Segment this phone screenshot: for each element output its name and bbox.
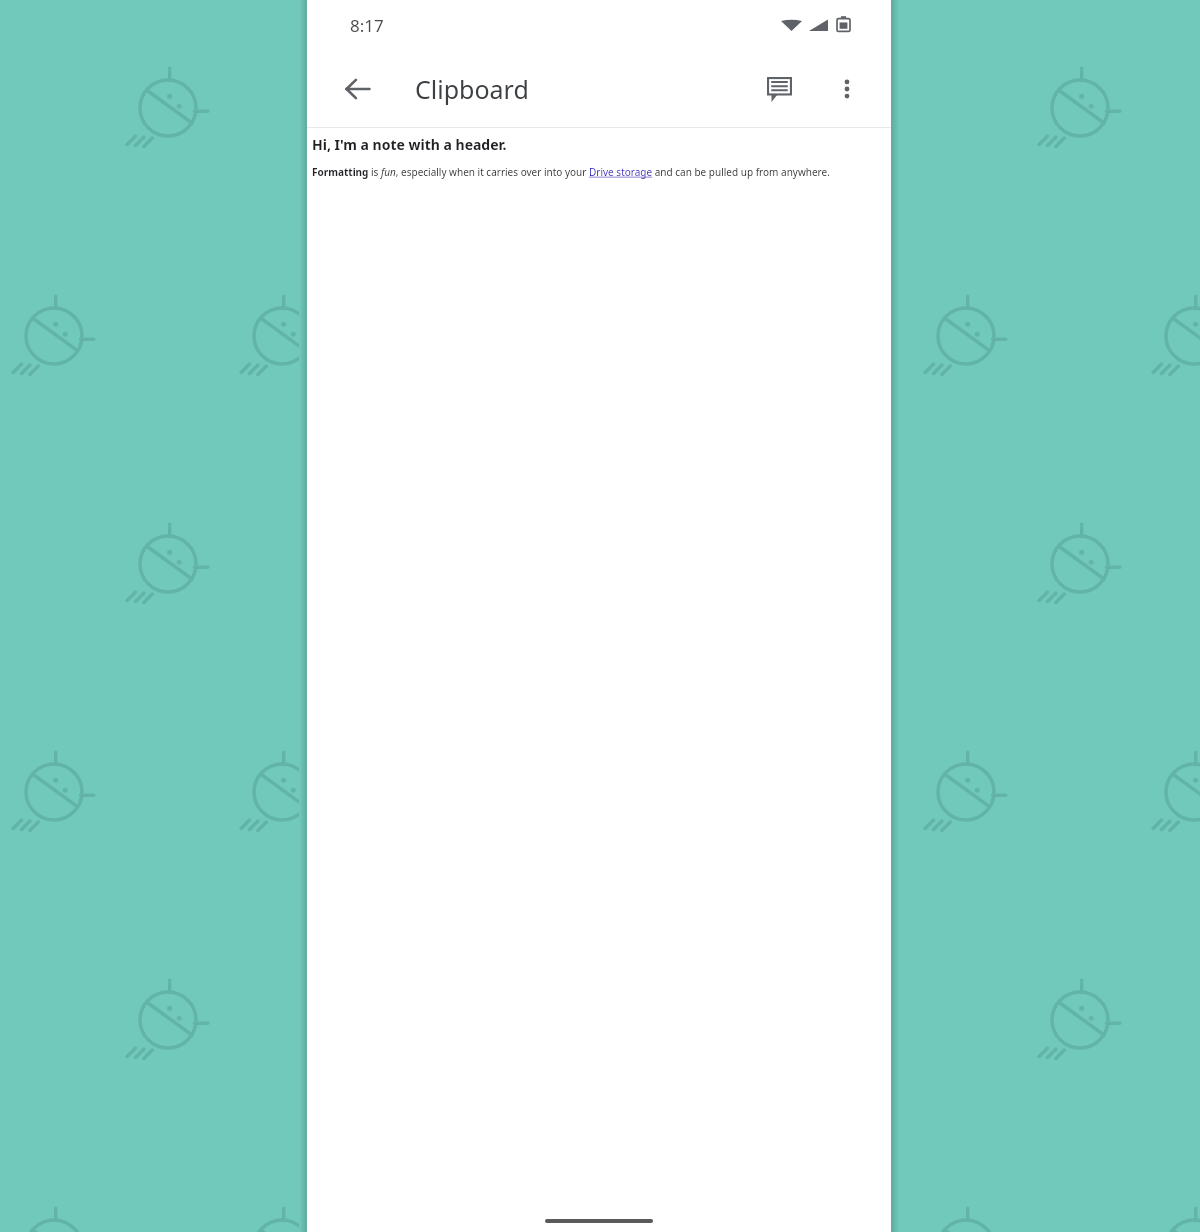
staticText: 8:17	[350, 14, 384, 37]
button[interactable]: More options	[825, 67, 869, 111]
staticText: Clipboard	[415, 72, 529, 106]
staticText: Hi, I'm a note with a header.	[312, 135, 507, 154]
staticText: Formatting is fun, especially when it ca…	[312, 165, 830, 179]
button[interactable]: Back	[333, 64, 383, 114]
button[interactable]: Comments	[755, 65, 803, 113]
